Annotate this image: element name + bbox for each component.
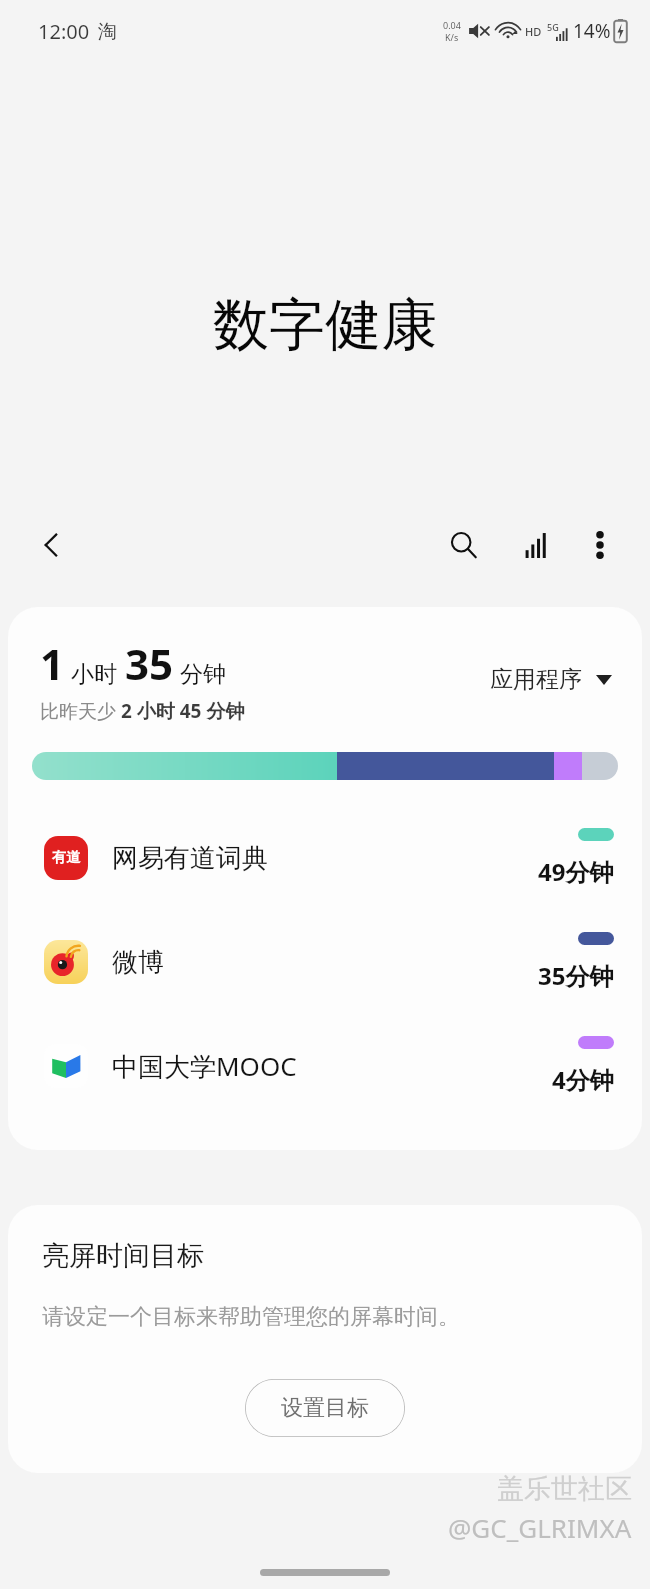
staticText: 35分钟 (538, 959, 614, 992)
button[interactable]: 中国大学MOOC (8, 1014, 642, 1118)
staticText: 中国大学MOOC (112, 1048, 552, 1084)
button[interactable]: 应用程序 (484, 659, 618, 700)
staticText: 淘 (98, 20, 117, 44)
staticText: 请设定一个目标来帮助管理您的屏幕时间。 (42, 1303, 460, 1331)
button[interactable]: More options (572, 517, 628, 573)
button[interactable]: Statistics (506, 515, 566, 575)
staticText: 数字健康 (24, 290, 626, 361)
staticText: 5G (547, 21, 559, 33)
staticText: 网易有道词典 (112, 842, 538, 875)
staticText: 1 (40, 635, 65, 692)
staticText: 35 (125, 635, 174, 692)
staticText: 设置目标 (281, 1394, 369, 1422)
button[interactable]: 有道 (8, 806, 642, 910)
staticText: 微博 (112, 946, 538, 979)
staticText: 4分钟 (552, 1063, 614, 1096)
staticText: 有道 (52, 849, 80, 867)
staticText: 亮屏时间目标 (42, 1239, 204, 1273)
staticText: 小时 (71, 660, 117, 689)
button[interactable]: 微博 (8, 910, 642, 1014)
staticText: 14% (573, 18, 611, 44)
staticText: 比昨天少 (40, 698, 121, 724)
button[interactable]: Back (24, 517, 80, 573)
staticText: 0.04 (443, 19, 461, 31)
staticText: 2 小时 45 分钟 (121, 698, 245, 724)
staticText: 49分钟 (538, 855, 614, 888)
staticText: HD (525, 24, 542, 39)
staticText: 应用程序 (490, 665, 582, 694)
button[interactable]: 设置目标 (245, 1379, 405, 1437)
staticText: 12:00 (38, 18, 90, 45)
staticText: 盖乐世社区 (497, 1472, 632, 1506)
staticText: @GC_GLRIMXA (448, 1510, 632, 1545)
staticText: 分钟 (180, 660, 226, 689)
staticText: K/s (445, 31, 459, 43)
button[interactable]: Search (434, 515, 494, 575)
